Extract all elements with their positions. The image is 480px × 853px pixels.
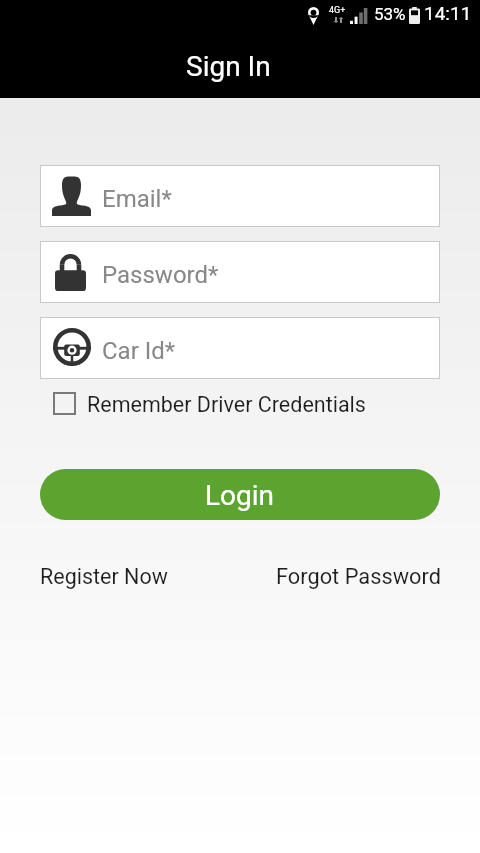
button[interactable]: Car Id (40, 317, 440, 379)
staticText: Forgot Password (276, 564, 441, 590)
staticText: Login (205, 479, 275, 512)
staticText: Remember Driver Credentials (87, 392, 366, 417)
button[interactable]: Email (40, 165, 440, 227)
staticText: Email* (102, 185, 172, 213)
staticText: 53% (374, 4, 406, 24)
button[interactable]: Forgot Password (276, 558, 441, 596)
staticText: 4G+ (329, 5, 346, 16)
staticText: Car Id* (102, 337, 176, 365)
staticText: Password* (102, 261, 219, 289)
button[interactable]: Remember Driver Credentials (53, 390, 366, 417)
button[interactable]: Login (40, 469, 440, 520)
button[interactable]: Register Now (40, 558, 168, 595)
button[interactable]: Password (40, 241, 440, 303)
other: Email (40, 165, 440, 227)
staticText: Sign In (186, 50, 271, 83)
other: Car Id (40, 317, 440, 379)
other: Password (40, 241, 440, 303)
staticText: Register Now (40, 564, 168, 589)
staticText: 14:11 (424, 2, 472, 24)
